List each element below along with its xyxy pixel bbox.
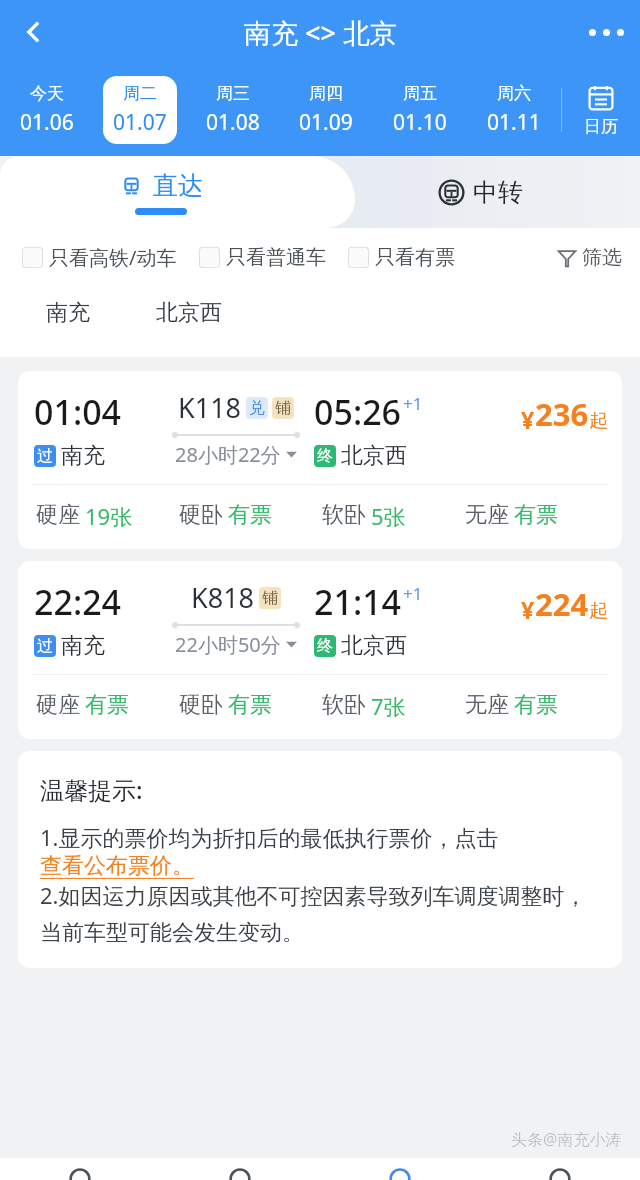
staticText: 日历 bbox=[584, 116, 618, 137]
staticText: 只看有票 bbox=[375, 245, 455, 270]
button[interactable]: 直达 bbox=[0, 156, 320, 228]
staticText: 周四 bbox=[309, 83, 343, 104]
button[interactable]: 周二 bbox=[103, 76, 177, 144]
staticText: 7张 bbox=[371, 691, 406, 721]
staticText: 直达 bbox=[153, 170, 203, 201]
staticText: 硬座 bbox=[36, 501, 80, 529]
button[interactable]: 筛选 bbox=[557, 245, 622, 270]
staticText: 起 bbox=[589, 409, 608, 433]
button[interactable]: 南充 bbox=[20, 287, 116, 339]
button[interactable]: 今天 bbox=[10, 76, 84, 144]
staticText: 05:26 bbox=[314, 389, 402, 435]
staticText: 起 bbox=[589, 599, 608, 623]
button[interactable]: 中转 bbox=[320, 156, 640, 228]
staticText: 铺 bbox=[275, 398, 291, 418]
staticText: 北京西 bbox=[341, 632, 407, 660]
staticText: +1 bbox=[403, 582, 423, 605]
staticText: 周五 bbox=[403, 83, 437, 104]
staticText: K818 bbox=[191, 579, 255, 616]
staticText: 01:04 bbox=[34, 389, 122, 435]
button[interactable]: 周六 bbox=[477, 76, 551, 144]
button[interactable]: 01:04 bbox=[18, 371, 622, 549]
staticText: 硬卧 bbox=[179, 691, 223, 719]
staticText: 01.11 bbox=[487, 108, 541, 137]
staticText: 只看普通车 bbox=[226, 245, 326, 270]
staticText: 温馨提示: bbox=[40, 773, 143, 806]
button[interactable]: Back bbox=[6, 4, 62, 60]
button[interactable]: 周五 bbox=[383, 76, 457, 144]
staticText: 筛选 bbox=[582, 245, 622, 270]
staticText: 过 bbox=[37, 636, 53, 656]
staticText: 过 bbox=[37, 446, 53, 466]
staticText: 软卧 bbox=[322, 501, 366, 529]
staticText: 只看高铁/动车 bbox=[49, 244, 177, 271]
button[interactable]: 只看高铁/动车 bbox=[22, 244, 177, 271]
staticText: ¥ bbox=[521, 404, 535, 435]
staticText: 有票 bbox=[228, 691, 272, 719]
staticText: 01.10 bbox=[393, 108, 447, 137]
staticText: 01.06 bbox=[20, 108, 74, 137]
staticText: 头条@南充小涛 bbox=[511, 1128, 622, 1150]
staticText: 软卧 bbox=[322, 691, 366, 719]
button[interactable]: Nav item 3 bbox=[320, 1158, 480, 1180]
staticText: 南充 bbox=[61, 632, 105, 660]
staticText: 周二 bbox=[123, 83, 157, 104]
staticText: 有票 bbox=[514, 501, 558, 529]
staticText: 终 bbox=[317, 636, 333, 656]
staticText: 1.显示的票价均为折扣后的最低执行票价，点击 bbox=[40, 822, 505, 852]
button[interactable]: 北京西 bbox=[130, 287, 248, 339]
staticText: 铺 bbox=[262, 588, 278, 608]
staticText: 22:24 bbox=[34, 579, 122, 625]
button[interactable]: 查看公布票价。 bbox=[40, 852, 194, 880]
staticText: 无座 bbox=[465, 691, 509, 719]
staticText: 有票 bbox=[514, 691, 558, 719]
staticText: 中转 bbox=[473, 177, 523, 208]
staticText: 01.08 bbox=[206, 108, 260, 137]
staticText: K118 bbox=[178, 389, 242, 426]
button[interactable]: 22:24 bbox=[18, 561, 622, 739]
staticText: 硬座 bbox=[36, 691, 80, 719]
staticText: 南充 bbox=[46, 299, 90, 327]
staticText: 28小时22分 bbox=[175, 441, 281, 468]
staticText: 今天 bbox=[30, 83, 64, 104]
button[interactable]: 周三 bbox=[196, 76, 270, 144]
staticText: 01.07 bbox=[113, 108, 167, 137]
button[interactable]: More options bbox=[580, 6, 632, 58]
staticText: 有票 bbox=[228, 501, 272, 529]
staticText: 22小时50分 bbox=[175, 631, 281, 658]
staticText: 224 bbox=[535, 583, 589, 625]
button[interactable]: 周四 bbox=[289, 76, 363, 144]
staticText: 周三 bbox=[216, 83, 250, 104]
staticText: 南充 bbox=[61, 442, 105, 470]
staticText: 5张 bbox=[371, 501, 406, 531]
button[interactable]: Nav item 1 bbox=[0, 1158, 160, 1180]
staticText: 北京西 bbox=[156, 299, 222, 327]
staticText: +1 bbox=[403, 392, 423, 415]
staticText: 硬卧 bbox=[179, 501, 223, 529]
staticText: 01.09 bbox=[299, 108, 353, 137]
staticText: 终 bbox=[317, 446, 333, 466]
staticText: 21:14 bbox=[314, 579, 402, 625]
staticText: 兑 bbox=[249, 398, 265, 418]
button[interactable]: 只看普通车 bbox=[199, 245, 326, 270]
staticText: 南充 <> 北京 bbox=[244, 14, 397, 51]
staticText: ¥ bbox=[521, 594, 535, 625]
button[interactable]: 只看有票 bbox=[348, 245, 455, 270]
button[interactable]: Nav item 2 bbox=[160, 1158, 320, 1180]
staticText: 236 bbox=[535, 393, 589, 435]
button[interactable]: 日历 bbox=[562, 77, 640, 143]
staticText: 北京西 bbox=[341, 442, 407, 470]
staticText: 有票 bbox=[85, 691, 129, 719]
staticText: 19张 bbox=[85, 501, 133, 531]
button[interactable]: Nav item 4 bbox=[480, 1158, 640, 1180]
staticText: 2.如因运力原因或其他不可控因素导致列车调度调整时，当前车型可能会发生变动。 bbox=[40, 880, 600, 946]
staticText: 无座 bbox=[465, 501, 509, 529]
staticText: 周六 bbox=[497, 83, 531, 104]
